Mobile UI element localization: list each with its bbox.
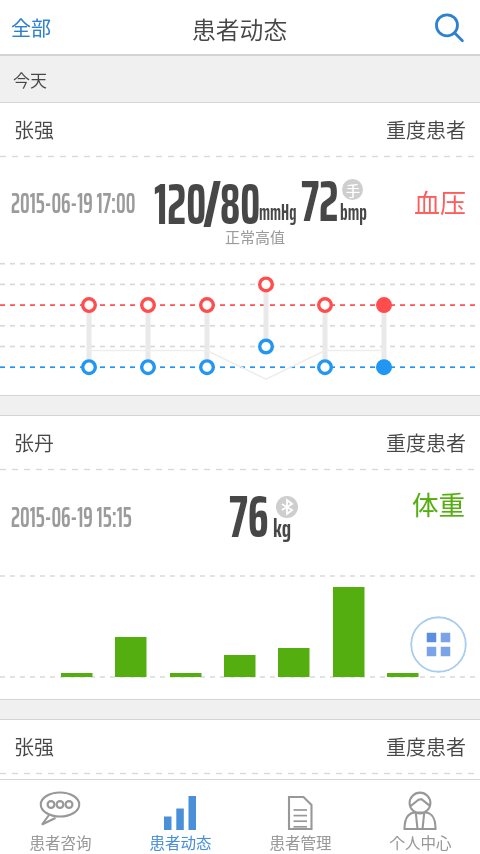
staticText: 80	[220, 159, 260, 249]
button[interactable]: 2015-06-19 17:00	[0, 157, 480, 253]
button[interactable]: 患者管理	[240, 779, 360, 854]
staticText: 手	[346, 180, 360, 200]
staticText: bmp	[340, 195, 368, 230]
button[interactable]: 张强	[0, 103, 480, 156]
staticText: kg	[273, 510, 291, 548]
staticText: 2015-06-19 15:15	[11, 494, 132, 540]
staticText: 个人中心	[389, 831, 452, 853]
button[interactable]: 个人中心	[360, 779, 480, 854]
staticText: 120	[154, 159, 207, 249]
button[interactable]: More options	[410, 616, 467, 673]
staticText: 重度患者	[386, 732, 466, 761]
staticText: 体重	[412, 484, 465, 522]
button[interactable]: Search	[426, 5, 472, 51]
button[interactable]: 2015-06-19 15:15	[0, 470, 480, 549]
button[interactable]: 张丹	[0, 416, 480, 469]
staticText: 全部	[11, 13, 51, 42]
staticText: 血压	[414, 183, 467, 221]
staticText: 重度患者	[386, 115, 466, 144]
staticText: /	[202, 159, 223, 249]
staticText: 张强	[14, 115, 54, 144]
staticText: 患者动态	[192, 11, 288, 45]
button[interactable]: 张强	[0, 720, 480, 773]
staticText: 患者动态	[149, 831, 212, 853]
staticText: 72	[301, 156, 339, 246]
staticText: 患者管理	[269, 831, 332, 853]
button[interactable]: 患者动态	[120, 779, 240, 854]
staticText: 2015-06-19 17:00	[11, 180, 136, 226]
button[interactable]: 全部	[0, 3, 63, 52]
button[interactable]: 患者咨询	[0, 779, 120, 854]
staticText: 76	[229, 470, 269, 549]
staticText: mmHg	[259, 195, 297, 230]
staticText: 患者咨询	[29, 831, 92, 853]
staticText: 张强	[14, 732, 54, 761]
staticText: 今天	[13, 67, 47, 92]
staticText: 重度患者	[386, 428, 466, 457]
staticText: 正常高值	[225, 226, 286, 248]
staticText: 张丹	[14, 428, 54, 457]
